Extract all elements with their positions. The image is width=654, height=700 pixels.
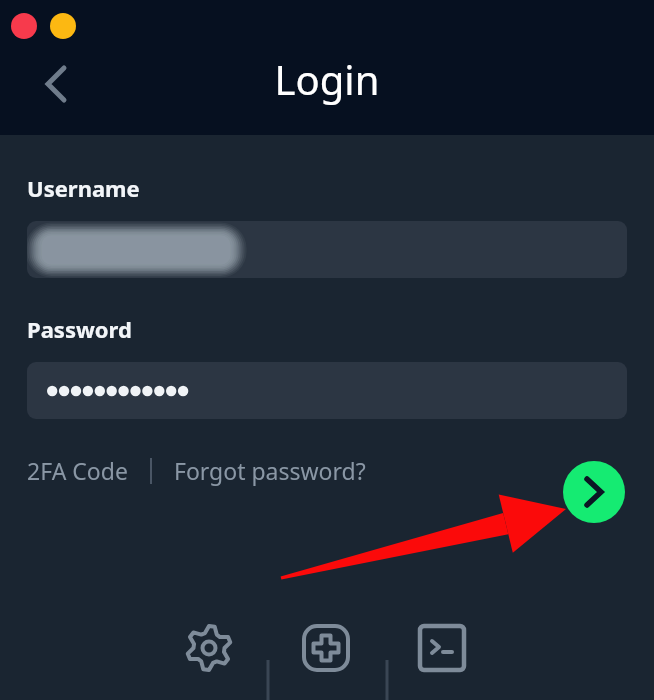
button[interactable]: Settings bbox=[177, 616, 241, 680]
button[interactable] bbox=[27, 221, 627, 278]
staticText: 2FA Code bbox=[27, 455, 128, 486]
button[interactable] bbox=[27, 362, 627, 419]
button[interactable]: 2FA Code bbox=[27, 455, 128, 486]
staticText: Password bbox=[27, 314, 132, 344]
button[interactable]: Submit bbox=[563, 461, 625, 523]
button[interactable]: Back bbox=[28, 56, 84, 112]
staticText: Username bbox=[27, 173, 140, 203]
button[interactable]: Add bbox=[294, 616, 358, 680]
staticText: Forgot password? bbox=[174, 455, 366, 486]
staticText: Login bbox=[0, 52, 654, 106]
button[interactable]: Terminal bbox=[410, 616, 474, 680]
button[interactable]: Forgot password? bbox=[174, 455, 366, 486]
